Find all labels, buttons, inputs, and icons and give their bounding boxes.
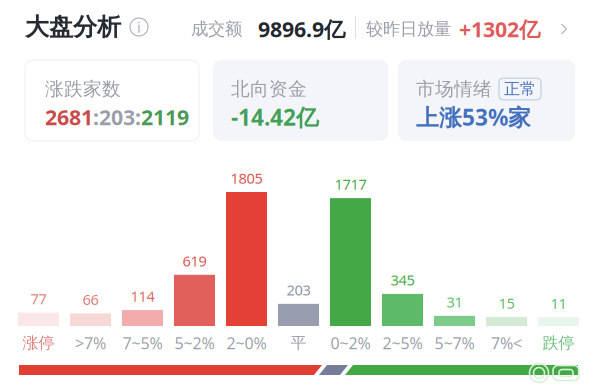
- staticText: 15: [498, 293, 514, 313]
- staticText: 5~7%: [434, 332, 474, 354]
- staticText: 平: [290, 333, 306, 353]
- button[interactable]: 北向资金: [213, 60, 388, 141]
- staticText: 2~0%: [226, 332, 266, 354]
- button[interactable]: 涨跌家数: [25, 60, 199, 141]
- staticText: 2~5%: [382, 332, 422, 354]
- staticText: 正常: [504, 79, 536, 99]
- button[interactable]: 成交额: [191, 17, 346, 41]
- staticText: 66: [82, 290, 98, 309]
- staticText: 77: [30, 289, 46, 308]
- staticText: +1302亿: [459, 15, 540, 43]
- button[interactable]: 市场情绪: [398, 60, 575, 141]
- staticText: 1717: [334, 174, 366, 194]
- staticText: 涨跌家数: [45, 77, 121, 100]
- staticText: 较昨日放量: [366, 18, 451, 40]
- button[interactable]: 大盘分析: [25, 14, 150, 40]
- staticText: 北向资金: [231, 77, 307, 100]
- staticText: 大盘分析: [25, 12, 121, 42]
- staticText: 上涨53%家: [416, 102, 531, 132]
- staticText: 0~2%: [330, 332, 370, 354]
- staticText: 跌停: [542, 333, 574, 353]
- staticText: 9896.9亿: [258, 15, 345, 43]
- staticText: :203:: [93, 103, 141, 131]
- staticText: 市场情绪: [416, 77, 492, 100]
- staticText: 涨停: [22, 333, 54, 353]
- staticText: 7~5%: [122, 332, 162, 354]
- staticText: 5~2%: [174, 332, 214, 354]
- staticText: 114: [130, 286, 154, 306]
- staticText: 7%<: [491, 332, 522, 354]
- staticText: 31: [446, 292, 462, 312]
- staticText: 1805: [230, 168, 262, 188]
- staticText: 619: [182, 251, 206, 271]
- staticText: 11: [550, 293, 566, 313]
- staticText: 2681: [45, 103, 93, 131]
- staticText: >7%: [75, 332, 106, 354]
- staticText: i: [137, 17, 141, 37]
- staticText: 203: [286, 280, 310, 300]
- staticText: 2119: [141, 103, 189, 131]
- button[interactable]: 较昨日放量: [366, 17, 572, 41]
- staticText: 345: [390, 270, 414, 290]
- staticText: 成交额: [191, 18, 242, 40]
- staticText: -14.42亿: [231, 102, 319, 132]
